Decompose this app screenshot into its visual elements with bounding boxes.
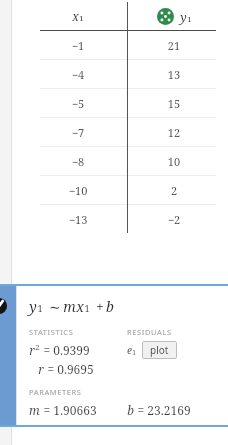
staticText: STATISTICS [29, 327, 74, 337]
button[interactable]: plot [142, 341, 177, 359]
button[interactable]: −7 [30, 118, 222, 146]
staticText: −10 [30, 183, 126, 198]
staticText: −4 [30, 67, 126, 82]
staticText: −7 [30, 125, 126, 140]
staticText: x [76, 297, 84, 316]
staticText: = 0.9399 [40, 342, 90, 358]
staticText: b [127, 402, 134, 418]
staticText: e [127, 343, 132, 357]
staticText: −2 [126, 212, 222, 227]
staticText: RESIDUALS [127, 327, 172, 337]
staticText: = 0.9695 [44, 361, 94, 377]
staticText: −8 [30, 154, 126, 169]
staticText: = 23.2169 [134, 402, 191, 418]
staticText: r [29, 342, 35, 358]
button[interactable]: −10 [30, 176, 222, 204]
staticText: plot [150, 343, 169, 357]
button[interactable]: −1 [30, 31, 222, 59]
staticText: 2 [35, 342, 40, 353]
staticText: m [63, 297, 76, 316]
button[interactable]: Model options [0, 286, 16, 425]
staticText: m [29, 402, 40, 418]
staticText: 21 [126, 38, 222, 53]
staticText: −5 [30, 96, 126, 111]
staticText: x [72, 8, 79, 24]
staticText: −1 [30, 38, 126, 53]
staticText: y [29, 297, 37, 316]
staticText: 15 [126, 96, 222, 111]
staticText: 1 [132, 348, 136, 357]
staticText: b [106, 297, 114, 316]
staticText: 1 [37, 302, 43, 315]
button[interactable]: −13 [30, 205, 222, 233]
staticText: 10 [126, 154, 222, 169]
staticText: y [180, 9, 187, 25]
staticText: = 1.90663 [40, 402, 97, 418]
staticText: 1 [84, 302, 90, 315]
button[interactable]: −4 [30, 60, 222, 88]
button[interactable]: −5 [30, 89, 222, 117]
button[interactable]: −8 [30, 147, 222, 175]
staticText: 1 [79, 13, 84, 24]
staticText: r [38, 361, 44, 377]
staticText: −13 [30, 212, 126, 227]
staticText: 12 [126, 125, 222, 140]
staticText: 13 [126, 67, 222, 82]
button[interactable]: Data set y1 [157, 8, 174, 25]
staticText: ∼ [43, 297, 63, 316]
staticText: + [90, 297, 106, 316]
staticText: 1 [187, 14, 192, 25]
staticText: PARAMETERS [29, 387, 82, 397]
staticText: 2 [126, 183, 222, 198]
